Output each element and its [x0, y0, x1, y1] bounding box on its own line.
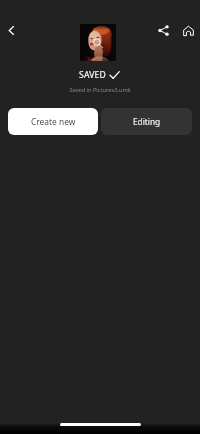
staticText: Saved in Pictures/Lumii — [0, 86, 200, 94]
staticText: Create new — [31, 116, 76, 127]
button[interactable]: Home — [178, 20, 198, 40]
button[interactable]: Editing — [101, 108, 192, 135]
staticText: SAVED — [79, 69, 107, 81]
button[interactable]: Create new — [8, 108, 98, 135]
button[interactable]: Share — [153, 20, 173, 40]
staticText: Editing — [133, 116, 161, 127]
button[interactable]: Back — [1, 20, 21, 40]
button[interactable]: Preview image — [80, 24, 116, 61]
